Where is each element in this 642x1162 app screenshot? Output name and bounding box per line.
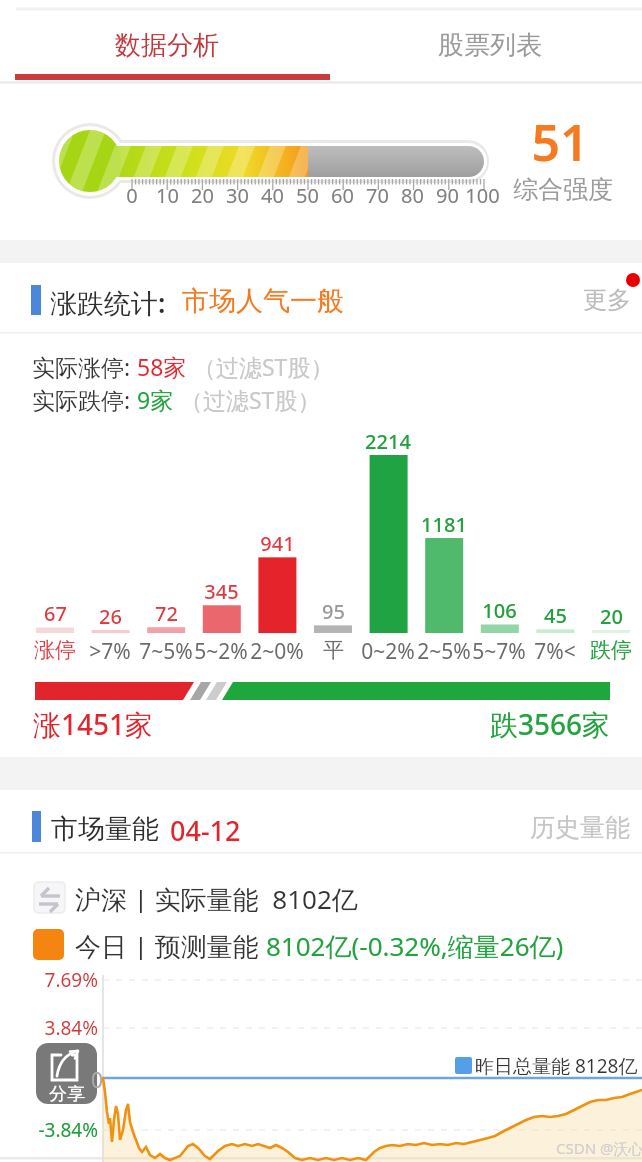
staticText: 58家 [137, 351, 187, 382]
staticText: （过滤ST股） [187, 351, 334, 382]
staticText: 0 [91, 1066, 104, 1095]
staticText: （过滤ST股） [174, 384, 321, 415]
staticText: 80 [401, 182, 424, 209]
staticText: 涨停 [34, 637, 76, 663]
staticText: 股票列表 [438, 29, 542, 62]
staticText: 综合强度 [513, 174, 613, 205]
staticText: 5~7% [472, 637, 526, 666]
button[interactable]: 分享 [36, 1043, 97, 1104]
staticText: 7.69% [44, 967, 98, 993]
staticText: 72 [155, 600, 178, 627]
staticText: 沪深 | 实际量能 8102亿 [75, 881, 358, 913]
staticText: 60 [331, 182, 354, 209]
staticText: 3.84% [44, 1015, 98, 1041]
staticText: 跌3566家 [489, 705, 610, 743]
staticText: 0 [126, 182, 138, 209]
staticText: 04-12 [170, 812, 241, 849]
staticText: 7%< [534, 637, 576, 666]
staticText: 历史量能 [530, 812, 630, 843]
staticText: 市场人气一般 [182, 284, 344, 318]
staticText: 0~2% [361, 637, 415, 666]
button[interactable]: 股票列表 [330, 20, 642, 80]
staticText: 实际跌停: [32, 384, 137, 415]
button[interactable]: 历史量能 [510, 800, 640, 846]
button[interactable]: 数据分析 [15, 20, 330, 80]
staticText: 8102亿(-0.32%,缩量26亿) [266, 928, 564, 960]
staticText: 分享 [49, 1083, 85, 1104]
staticText: 实际涨停: [32, 351, 137, 382]
staticText: 10 [156, 182, 179, 209]
staticText: 50 [296, 182, 319, 209]
staticText: 涨跌统计: [50, 284, 166, 321]
staticText: 51 [531, 108, 589, 176]
button[interactable]: 更多 [570, 270, 642, 320]
staticText: 30 [226, 182, 249, 209]
staticText: 1181 [421, 511, 467, 538]
staticText: 平 [323, 637, 344, 663]
staticText: 更多 [583, 285, 631, 315]
button[interactable]: 今日 | 预测量能 [75, 928, 564, 960]
staticText: 昨日总量能 8128亿 [475, 1053, 638, 1079]
staticText: 2214 [365, 428, 411, 455]
staticText: 345 [204, 578, 239, 605]
staticText: 45 [544, 602, 567, 629]
staticText: 100 [465, 182, 500, 209]
staticText: 67 [44, 600, 67, 627]
staticText: 90 [436, 182, 459, 209]
staticText: 涨1451家 [33, 705, 154, 743]
staticText: 5~2% [194, 637, 248, 666]
button[interactable]: 沪深 | 实际量能 8102亿 [75, 881, 358, 913]
staticText: -3.84% [38, 1117, 98, 1143]
staticText: 2~0% [250, 637, 304, 666]
staticText: 2~5% [417, 637, 471, 666]
staticText: >7% [89, 637, 131, 666]
staticText: 跌停 [590, 637, 632, 663]
staticText: CSDN @沃心 [556, 1138, 642, 1158]
staticText: 今日 | 预测量能 [75, 928, 266, 960]
staticText: 市场量能 [51, 812, 159, 846]
staticText: 9家 [137, 384, 174, 415]
staticText: 70 [366, 182, 389, 209]
staticText: 26 [99, 603, 122, 630]
staticText: 数据分析 [115, 29, 219, 62]
staticText: 941 [260, 530, 295, 557]
staticText: 95 [322, 598, 345, 625]
staticText: 40 [261, 182, 284, 209]
staticText: 7~5% [139, 637, 193, 666]
staticText: 20 [191, 182, 214, 209]
staticText: 106 [482, 597, 517, 624]
staticText: 20 [600, 603, 623, 630]
